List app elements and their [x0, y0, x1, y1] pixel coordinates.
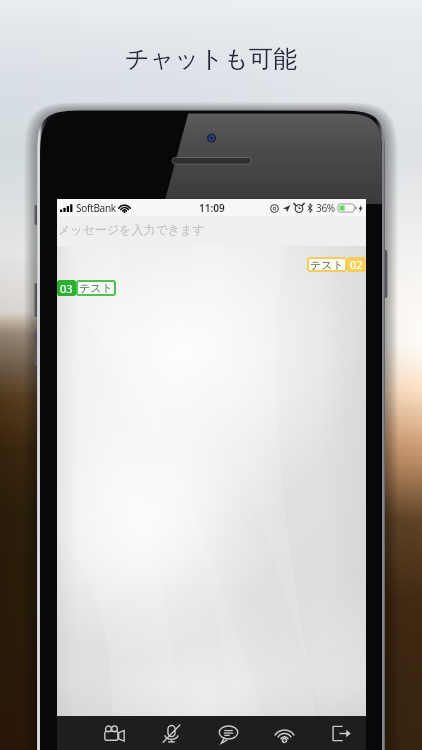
- staticText: チャットも可能: [125, 44, 298, 74]
- button[interactable]: Video camera: [86, 716, 142, 750]
- button[interactable]: Wi-Fi: [256, 716, 312, 750]
- staticText: 11:09: [199, 201, 225, 215]
- staticText: メッセージを入力できます: [58, 222, 205, 237]
- staticText: SoftBank: [76, 201, 116, 215]
- staticText: 03: [60, 281, 73, 296]
- button[interactable]: Chat: [200, 716, 256, 750]
- staticText: 02: [350, 257, 363, 272]
- staticText: テスト: [79, 281, 113, 295]
- staticText: テスト: [310, 258, 344, 272]
- staticText: 36%: [316, 201, 335, 215]
- button[interactable]: Mute microphone: [143, 716, 199, 750]
- button[interactable]: Exit: [313, 716, 369, 750]
